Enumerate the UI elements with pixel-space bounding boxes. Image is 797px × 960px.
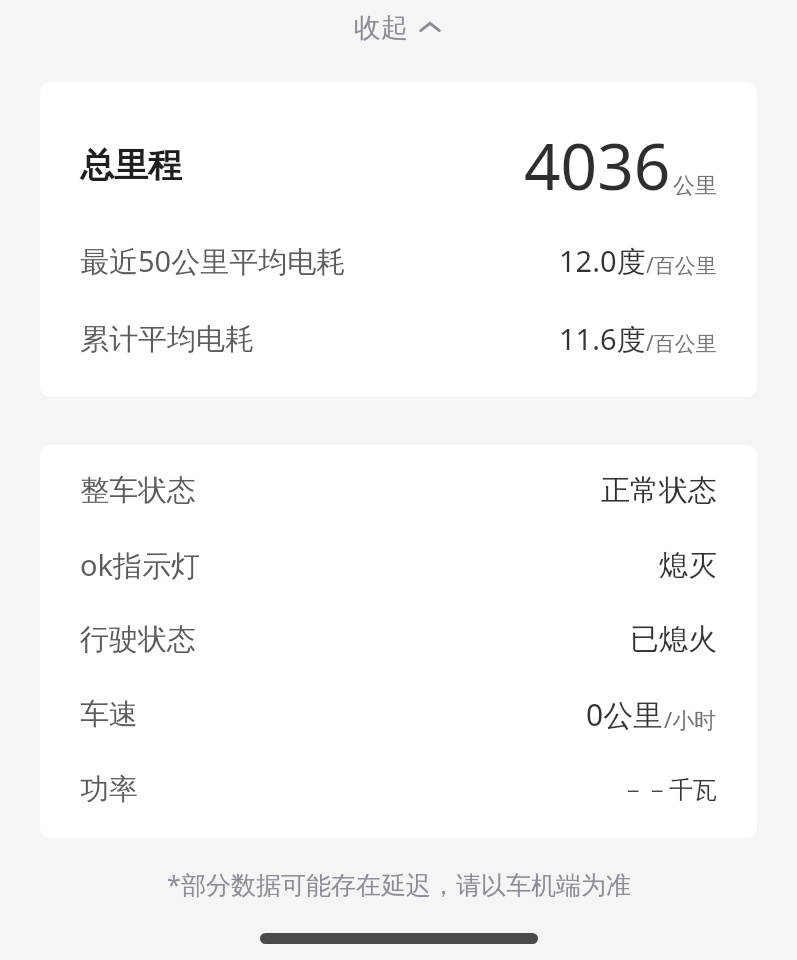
staticText: /百公里 bbox=[646, 251, 717, 280]
staticText: 11.6度 bbox=[559, 319, 646, 359]
staticText: 最近50公里平均电耗 bbox=[80, 241, 346, 281]
staticText: 累计平均电耗 bbox=[80, 321, 254, 358]
staticText: 熄灭 bbox=[659, 547, 717, 584]
staticText: 整车状态 bbox=[80, 472, 196, 509]
staticText: 公里 bbox=[673, 172, 717, 200]
button[interactable]: 累计平均电耗 bbox=[80, 319, 717, 359]
staticText: 已熄火 bbox=[630, 621, 717, 658]
staticText: ok指示灯 bbox=[80, 545, 201, 585]
staticText: 总里程 bbox=[80, 144, 182, 187]
staticText: 功率 bbox=[80, 771, 138, 808]
staticText: 0公里 bbox=[586, 694, 664, 735]
other: Collapse bbox=[417, 15, 443, 41]
staticText: /小时 bbox=[664, 704, 717, 734]
button[interactable]: 车速 bbox=[80, 694, 717, 735]
staticText: 4036 bbox=[524, 122, 671, 209]
button[interactable]: 收起 bbox=[344, 7, 453, 49]
staticText: 行驶状态 bbox=[80, 621, 196, 658]
staticText: /百公里 bbox=[646, 329, 717, 358]
staticText: 收起 bbox=[354, 11, 408, 45]
staticText: 12.0度 bbox=[559, 241, 646, 281]
staticText: *部分数据可能存在延迟，请以车机端为准 bbox=[167, 867, 631, 901]
button[interactable]: 整车状态 bbox=[40, 445, 757, 838]
staticText: 车速 bbox=[80, 696, 138, 733]
button[interactable]: 总里程 bbox=[40, 82, 757, 397]
staticText: 正常状态 bbox=[601, 472, 717, 509]
button[interactable]: 行驶状态 bbox=[80, 621, 717, 658]
staticText: －－千瓦 bbox=[621, 775, 717, 805]
button[interactable]: ok指示灯 bbox=[80, 545, 717, 585]
button[interactable]: 整车状态 bbox=[80, 472, 717, 509]
button[interactable]: 最近50公里平均电耗 bbox=[80, 241, 717, 281]
button[interactable]: 功率 bbox=[80, 771, 717, 808]
